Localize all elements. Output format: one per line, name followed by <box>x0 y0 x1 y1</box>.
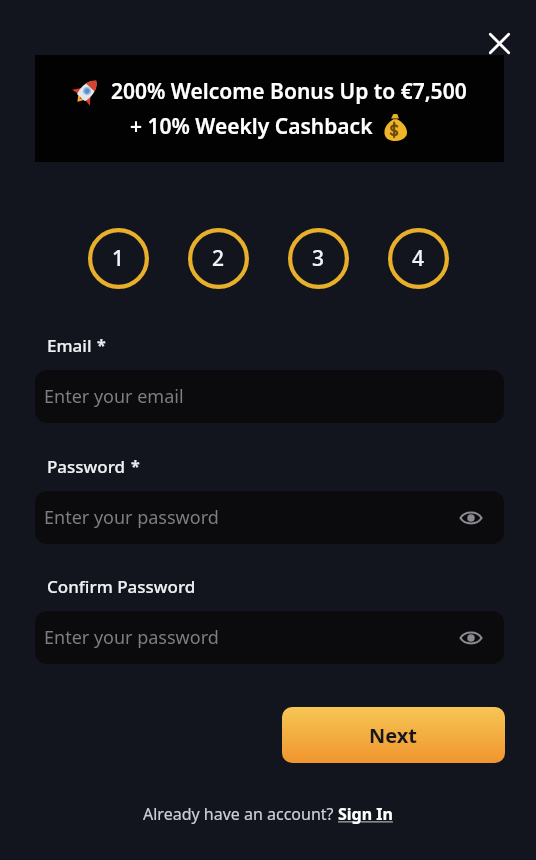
staticText: 4 <box>412 244 425 273</box>
staticText: Next <box>369 722 418 749</box>
staticText: Enter your password <box>44 505 219 530</box>
button[interactable]: Next <box>282 707 505 763</box>
button[interactable]: 200% Welcome Bonus Up to €7,500 <box>35 55 504 162</box>
staticText: Enter your email <box>44 384 184 409</box>
button[interactable]: Sign In <box>338 803 393 825</box>
button[interactable]: 3 <box>288 228 349 289</box>
staticText: 200% Welcome Bonus Up to €7,500 <box>111 77 467 106</box>
staticText: Sign In <box>338 803 393 825</box>
button[interactable]: 1 <box>88 228 149 289</box>
button[interactable]: Enter your password <box>35 611 504 664</box>
button[interactable]: Show password <box>456 623 486 653</box>
staticText: 1 <box>112 244 125 273</box>
staticText: Enter your password <box>44 625 219 650</box>
staticText: Confirm Password <box>47 575 196 598</box>
button[interactable]: 4 <box>388 228 449 289</box>
button[interactable]: Show password <box>456 503 486 533</box>
button[interactable]: Close <box>479 23 519 63</box>
staticText: + 10% Weekly Cashback <box>130 112 373 141</box>
button[interactable]: Enter your password <box>35 491 504 544</box>
staticText: Already have an account? <box>143 803 338 825</box>
staticText: 2 <box>212 244 225 273</box>
staticText: Email <box>47 334 92 357</box>
staticText: Password <box>47 455 126 478</box>
button[interactable]: 2 <box>188 228 249 289</box>
button[interactable]: Enter your email <box>35 370 504 423</box>
staticText: * <box>131 455 140 477</box>
staticText: * <box>97 334 106 356</box>
staticText: 3 <box>312 244 325 273</box>
